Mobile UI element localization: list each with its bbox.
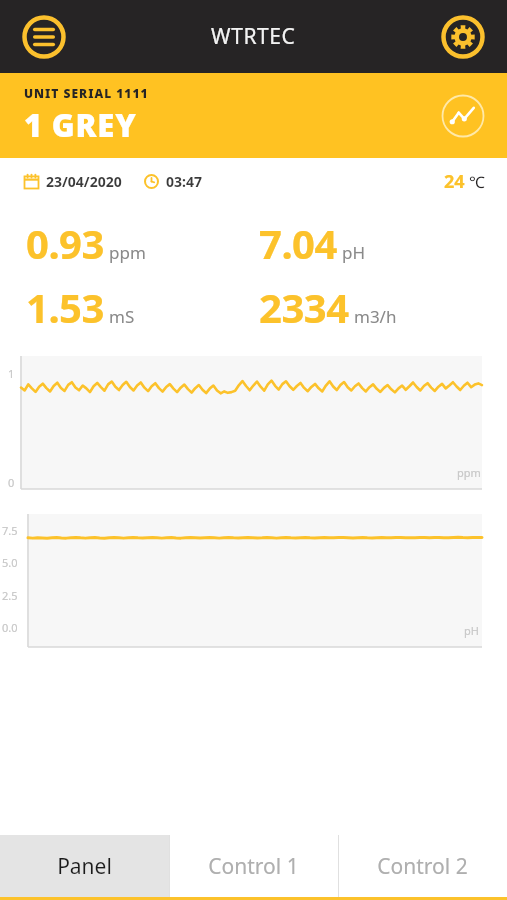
staticText: ℃ <box>469 171 485 193</box>
staticText: 7.5 <box>2 523 18 538</box>
staticText: Panel <box>57 852 112 881</box>
button[interactable]: Settings <box>437 11 489 63</box>
staticText: 0.93 <box>26 216 104 270</box>
staticText: WTRTEC <box>211 22 296 51</box>
staticText: ppm <box>457 465 481 480</box>
button[interactable]: Control 1 <box>169 835 338 897</box>
button[interactable]: Control 2 <box>338 835 507 897</box>
button[interactable]: Chart <box>439 92 487 140</box>
button[interactable]: Menu <box>18 11 70 63</box>
button[interactable]: Panel <box>0 835 169 897</box>
staticText: m3/h <box>354 305 397 328</box>
staticText: UNIT SERIAL 1111 <box>24 85 149 101</box>
staticText: Control 1 <box>208 852 299 881</box>
staticText: 7.04 <box>259 216 337 270</box>
staticText: 0 <box>8 475 15 490</box>
staticText: 23/04/2020 <box>46 172 122 191</box>
staticText: 03:47 <box>166 172 202 191</box>
staticText: 1 <box>8 366 15 381</box>
staticText: 5.0 <box>2 555 18 570</box>
staticText: 24 <box>444 169 465 194</box>
staticText: ppm <box>109 241 146 264</box>
staticText: 2.5 <box>2 588 18 603</box>
staticText: 0.0 <box>2 620 18 635</box>
staticText: mS <box>109 305 135 328</box>
staticText: pH <box>342 241 366 264</box>
staticText: 2334 <box>259 280 349 334</box>
staticText: pH <box>464 623 479 638</box>
staticText: Control 2 <box>377 852 468 881</box>
staticText: 1 GREY <box>24 104 137 146</box>
staticText: 1.53 <box>26 280 104 334</box>
